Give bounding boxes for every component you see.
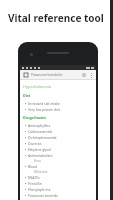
- staticText: Aminophylline: [28, 123, 51, 127]
- button[interactable]: Carbonazemide: [23, 128, 93, 134]
- staticText: Ethylene glycol: [28, 147, 52, 151]
- button[interactable]: Tabs: [23, 72, 28, 77]
- button[interactable]: Dichlorphenamide: [23, 134, 93, 140]
- button[interactable]: Melarsine: [23, 169, 93, 174]
- button[interactable]: Bookmark: [81, 72, 87, 78]
- staticText: Blood: [28, 164, 38, 168]
- button[interactable]: Penicillin: [23, 180, 93, 186]
- button[interactable]: Phenylephrine: [23, 186, 93, 192]
- staticText: Diuretics: [28, 141, 42, 145]
- button[interactable]: Urea: [23, 158, 93, 163]
- staticText: Hyperkalaemia: [23, 84, 52, 89]
- button[interactable]: Increased salt intake: [23, 100, 93, 106]
- button[interactable]: Ethylene glycol: [23, 146, 93, 152]
- button[interactable]: Very low protein diet: [23, 106, 93, 112]
- staticText: Dichlorphenamide: [28, 135, 57, 139]
- button[interactable]: Antimetabolites: [23, 152, 93, 158]
- button[interactable]: Blood: [23, 163, 93, 169]
- staticText: Phenylephrine: [28, 187, 51, 191]
- staticText: Increased salt intake: [28, 101, 60, 105]
- button[interactable]: More options: [88, 71, 94, 79]
- staticText: Penicillin: [28, 181, 42, 185]
- button[interactable]: Tabs: [20, 70, 96, 79]
- staticText: Vital reference tool: [8, 11, 104, 25]
- staticText: Carbonazemide: [28, 129, 53, 133]
- staticText: Potassium/metabolic: [31, 73, 63, 77]
- staticText: Potassium bromide: [28, 193, 59, 197]
- button[interactable]: Drugs/toxins: [23, 115, 47, 120]
- staticText: Very low protein diet: [28, 107, 60, 111]
- staticText: Urea: [34, 159, 41, 163]
- staticText: Antimetabolites: [28, 153, 53, 157]
- button[interactable]: Diuretics: [23, 140, 93, 146]
- button[interactable]: Diet: [23, 93, 31, 98]
- staticText: Melarsine: [34, 170, 48, 174]
- button[interactable]: Potassium bromide: [23, 192, 93, 198]
- button[interactable]: NSAIDs: [23, 174, 93, 180]
- button[interactable]: Aminophylline: [23, 122, 93, 128]
- staticText: NSAIDs: [28, 175, 40, 179]
